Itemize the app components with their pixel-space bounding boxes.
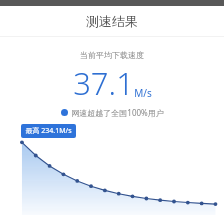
button[interactable]: Speed rank bbox=[61, 107, 164, 118]
button[interactable]: 最高 234.1M/s bbox=[21, 124, 76, 138]
staticText: 37.1 bbox=[73, 62, 134, 104]
staticText: 网速超越了全国100%用户 bbox=[71, 107, 164, 118]
button[interactable]: 测速结果 bbox=[0, 6, 224, 36]
staticText: 最高 234.1M/s bbox=[25, 126, 72, 136]
staticText: M/s bbox=[134, 86, 152, 100]
other: Speed rank bbox=[61, 109, 68, 116]
staticText: 当前平均下载速度 bbox=[80, 50, 144, 60]
staticText: 测速结果 bbox=[86, 13, 138, 29]
